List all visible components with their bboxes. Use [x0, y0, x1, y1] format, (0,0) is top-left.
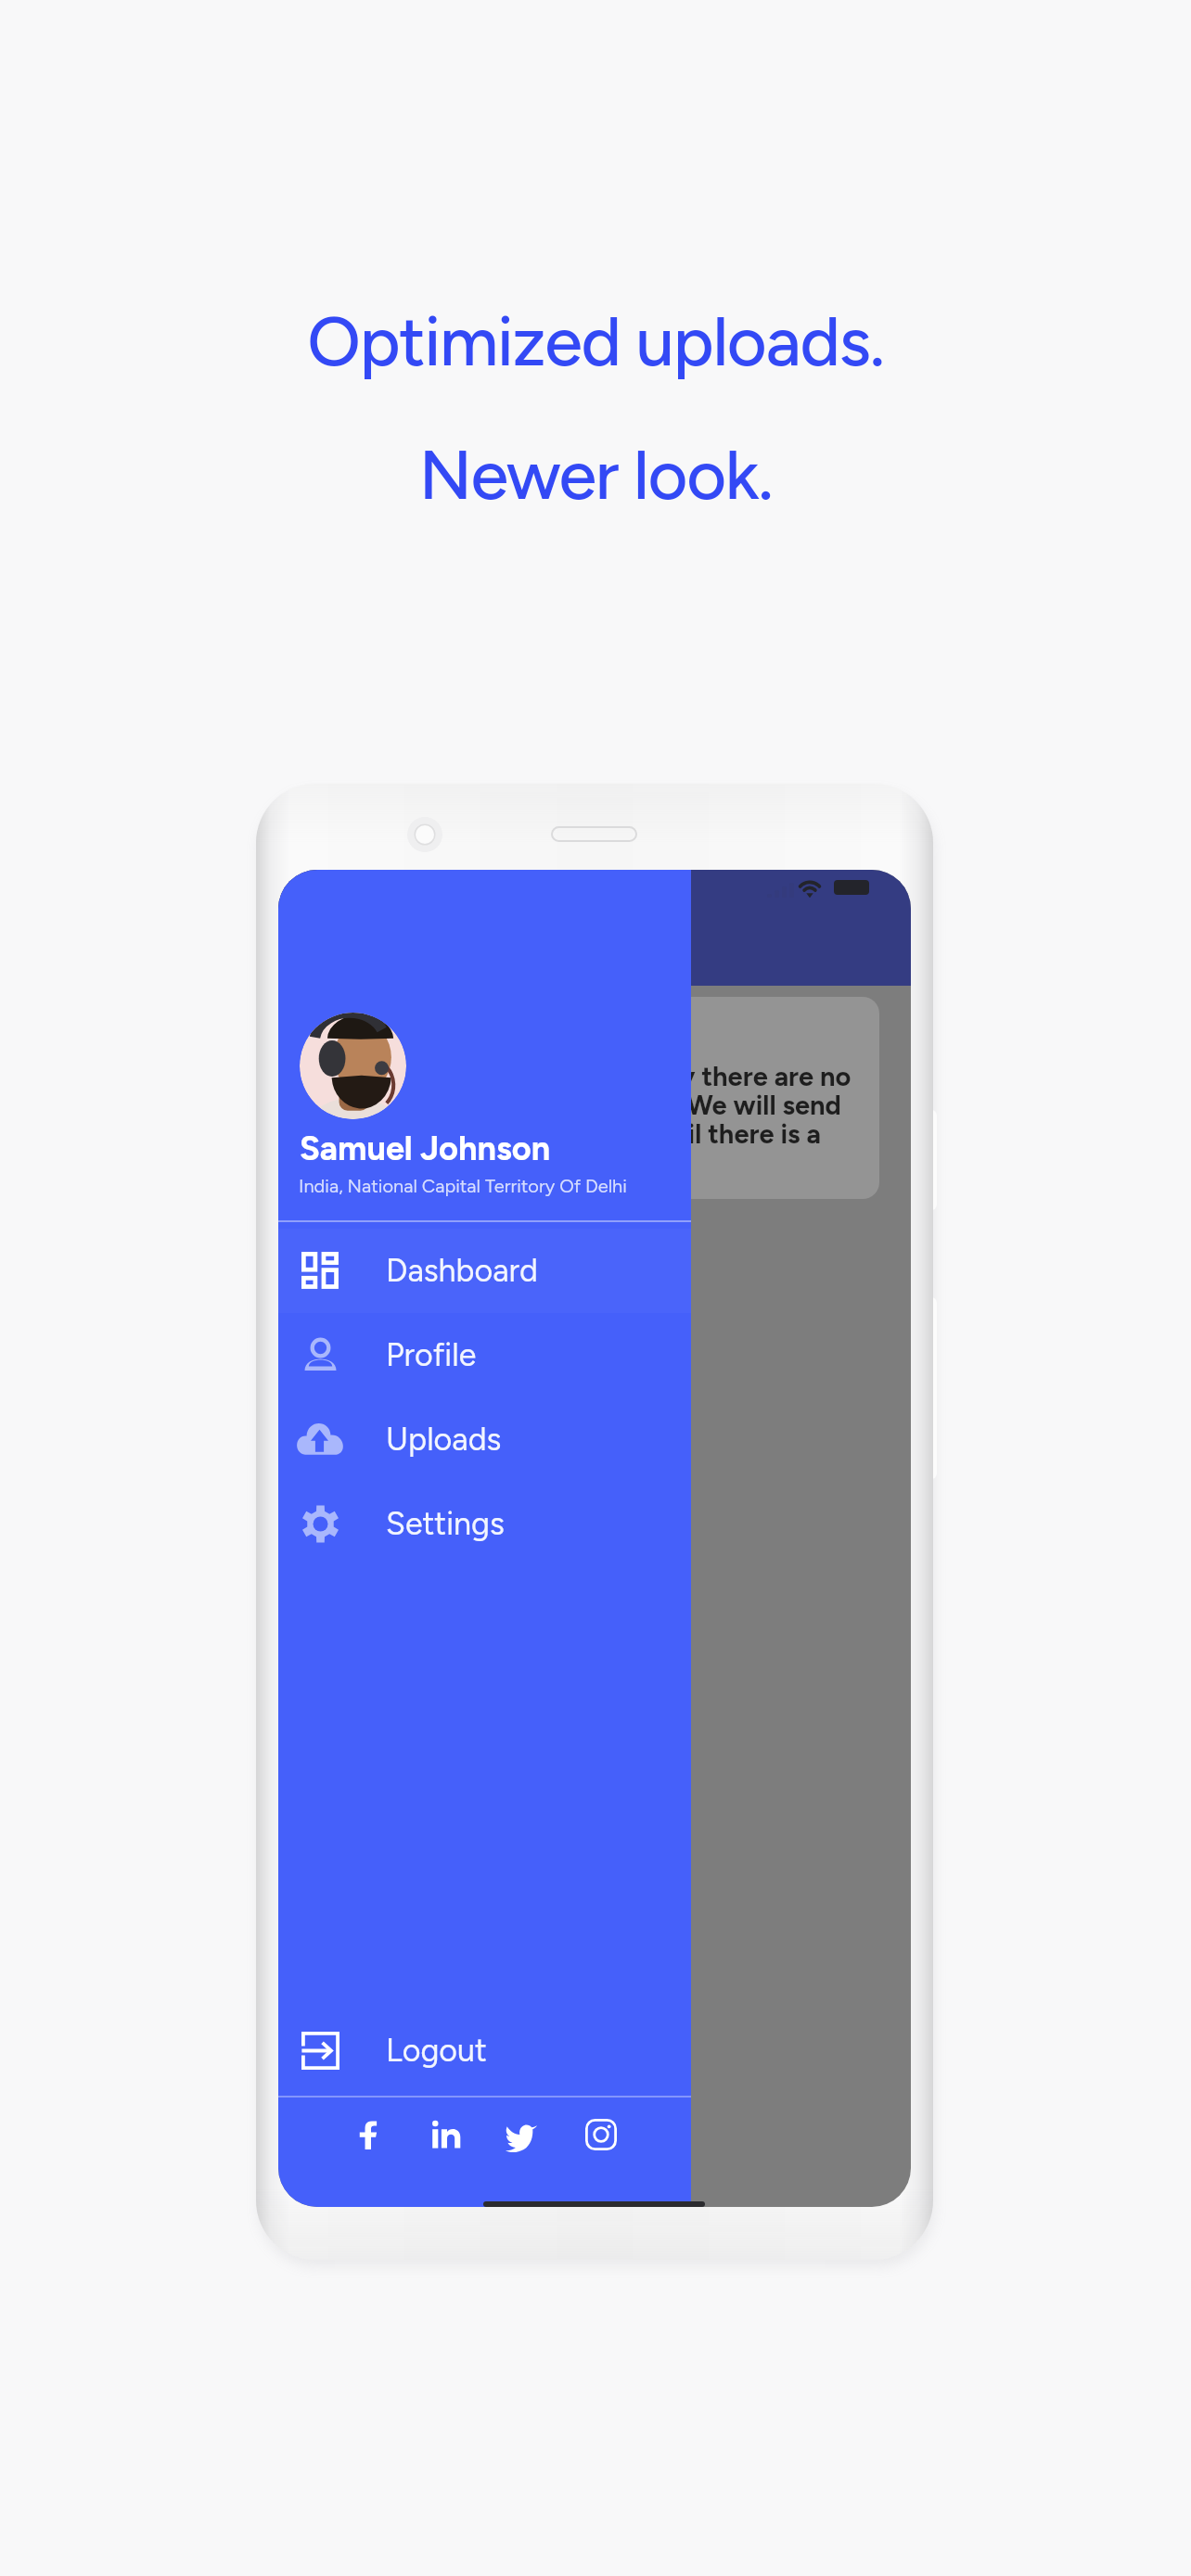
button[interactable]: Facebook: [336, 2099, 406, 2170]
button[interactable]: Uploads: [278, 1397, 691, 1482]
staticText: Logout: [386, 2032, 487, 2070]
staticText: Profile: [386, 1336, 477, 1374]
other: Profile photo: [300, 1013, 406, 1119]
button[interactable]: Close navigation drawer: [278, 870, 911, 2207]
button[interactable]: Settings: [278, 1482, 691, 1566]
staticText: India, National Capital Territory Of Del…: [299, 1175, 627, 1197]
staticText: Optimized uploads.: [0, 300, 1191, 383]
button[interactable]: Instagram: [566, 2099, 636, 2170]
button[interactable]: Profile: [278, 1313, 691, 1397]
staticText: Samuel Johnson: [300, 1129, 551, 1168]
staticText: Dashboard: [386, 1252, 538, 1290]
button[interactable]: Dashboard: [278, 1229, 691, 1313]
button[interactable]: Twitter: [486, 2099, 557, 2170]
staticText: Settings: [386, 1505, 505, 1543]
staticText: Currently there are no uploads. We will …: [577, 1060, 852, 1150]
button[interactable]: Logout: [278, 2009, 691, 2093]
staticText: Newer look.: [0, 434, 1191, 516]
staticText: Uploads: [386, 1421, 502, 1459]
button[interactable]: [278, 870, 691, 1221]
button[interactable]: LinkedIn: [411, 2099, 481, 2170]
